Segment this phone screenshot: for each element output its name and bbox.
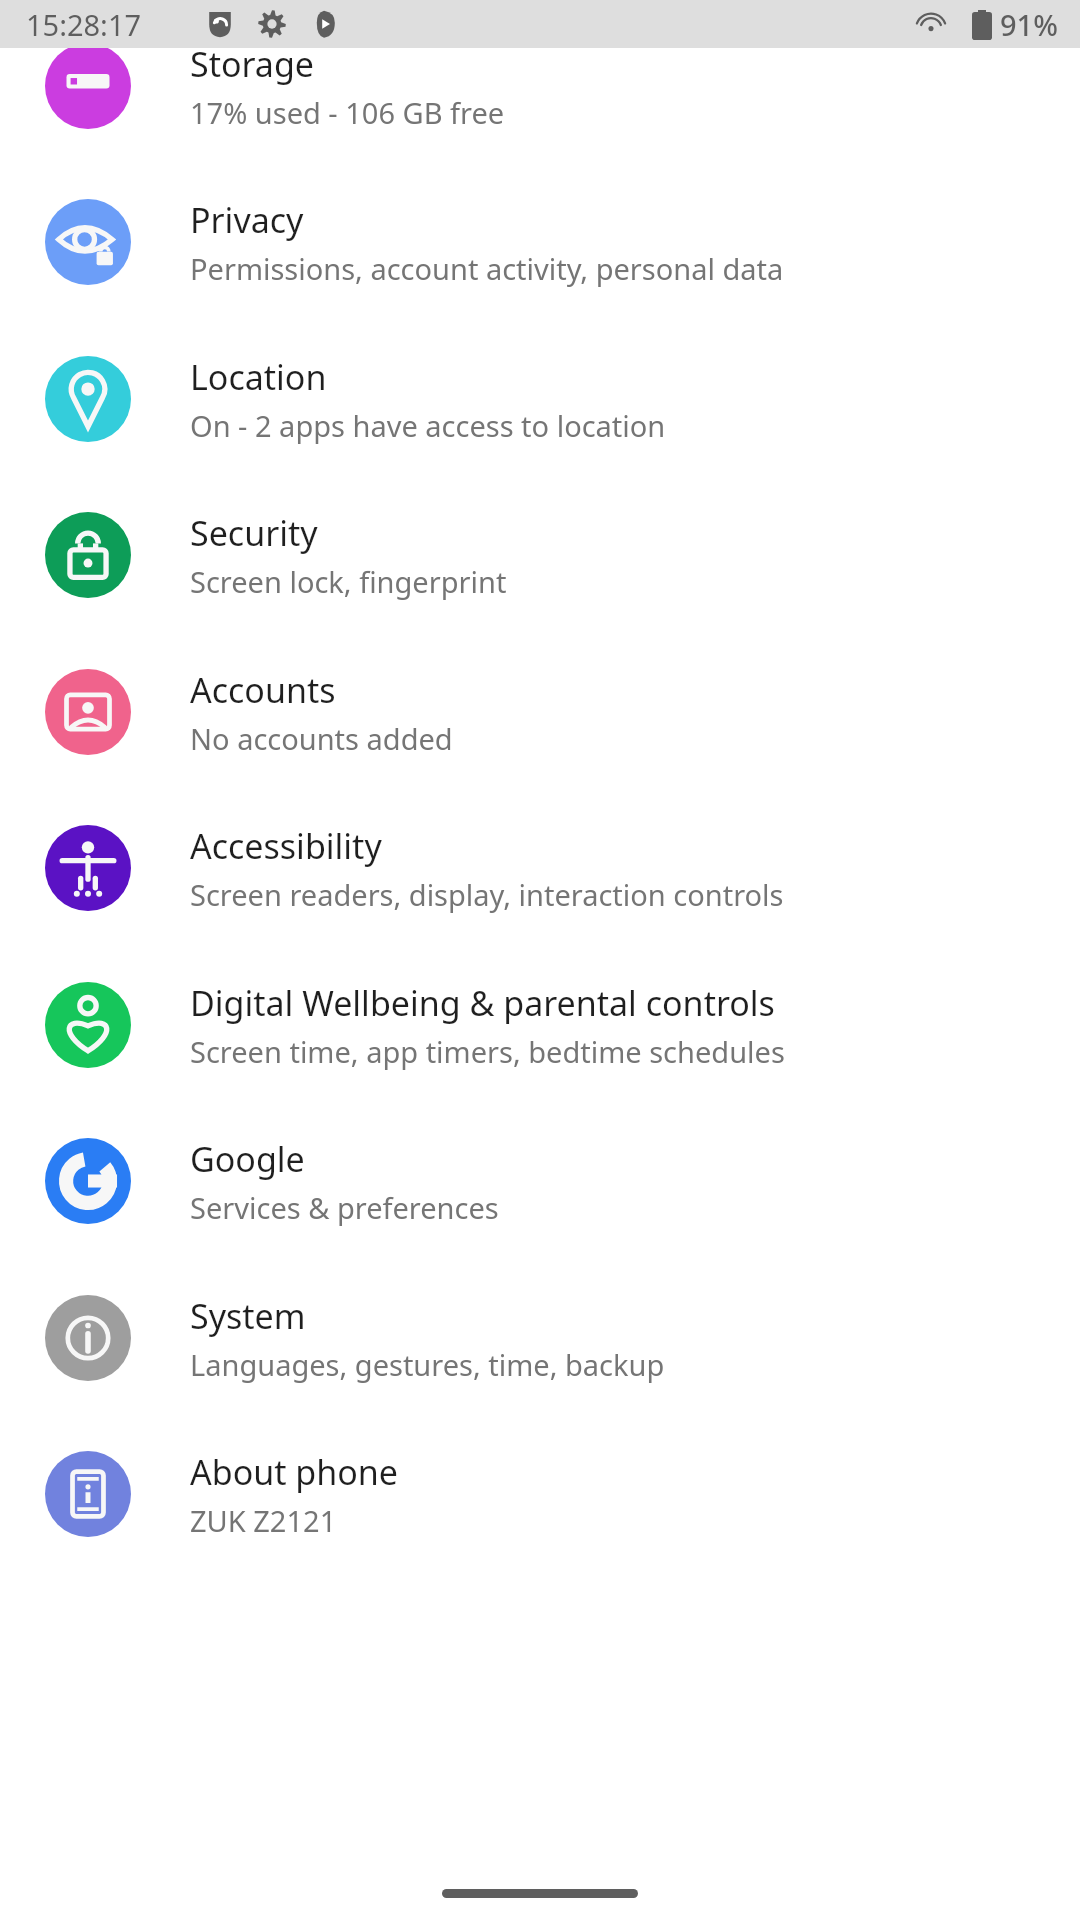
- staticText: Google: [190, 1136, 305, 1182]
- staticText: Screen time, app timers, bedtime schedul…: [190, 1032, 785, 1071]
- staticText: Screen readers, display, interaction con…: [190, 875, 784, 914]
- staticText: Languages, gestures, time, backup: [190, 1345, 665, 1384]
- button[interactable]: Google: [0, 1103, 1080, 1259]
- button[interactable]: Storage: [0, 8, 1080, 164]
- staticText: About phone: [190, 1449, 399, 1495]
- staticText: Digital Wellbeing & parental controls: [190, 980, 775, 1026]
- staticText: 17% used - 106 GB free: [190, 93, 505, 132]
- staticText: Location: [190, 354, 327, 400]
- staticText: Accessibility: [190, 823, 382, 869]
- button[interactable]: Digital Wellbeing & parental controls: [0, 947, 1080, 1103]
- staticText: 15:28:17: [26, 5, 142, 44]
- button[interactable]: Privacy: [0, 164, 1080, 320]
- staticText: Services & preferences: [190, 1188, 499, 1227]
- button[interactable]: Accessibility: [0, 790, 1080, 946]
- staticText: Permissions, account activity, personal …: [190, 249, 784, 288]
- button[interactable]: Security: [0, 477, 1080, 633]
- staticText: Accounts: [190, 667, 336, 713]
- button[interactable]: System: [0, 1260, 1080, 1416]
- staticText: System: [190, 1293, 306, 1339]
- staticText: Screen lock, fingerprint: [190, 562, 507, 601]
- button[interactable]: Location: [0, 321, 1080, 477]
- button[interactable]: Accounts: [0, 634, 1080, 790]
- staticText: ZUK Z2121: [190, 1501, 337, 1540]
- staticText: No accounts added: [190, 719, 453, 758]
- staticText: Storage: [190, 41, 315, 87]
- staticText: 91%: [1000, 5, 1058, 44]
- staticText: Security: [190, 510, 318, 556]
- staticText: On - 2 apps have access to location: [190, 406, 666, 445]
- staticText: Privacy: [190, 197, 304, 243]
- button[interactable]: About phone: [0, 1416, 1080, 1572]
